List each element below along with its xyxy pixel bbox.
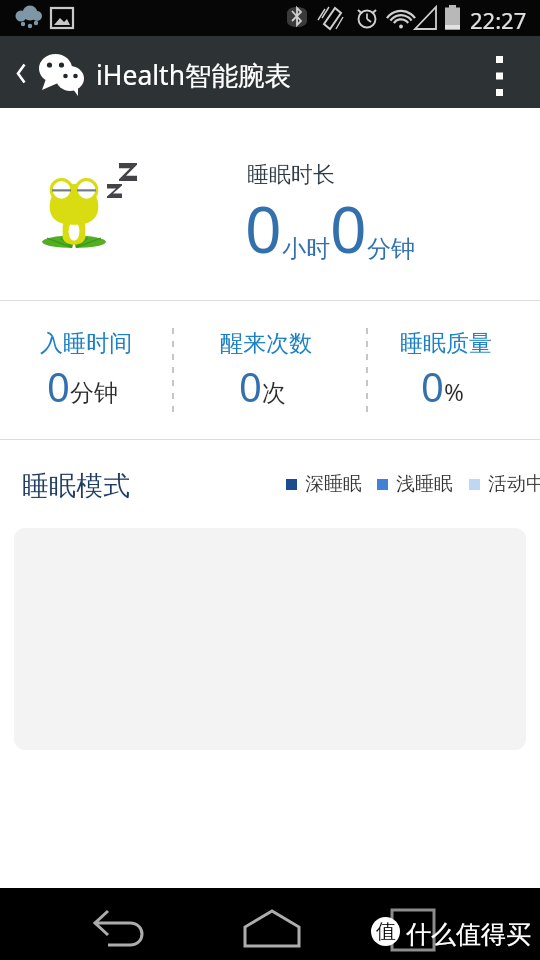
button[interactable]: Back — [86, 902, 150, 946]
staticText: 睡眠模式 — [22, 469, 130, 503]
button[interactable]: 入睡时间 — [0, 301, 180, 439]
staticText: 0 — [239, 359, 262, 413]
staticText: 0 — [330, 185, 367, 272]
staticText: 0 — [47, 359, 70, 413]
staticText: iHealth智能腕表 — [96, 57, 292, 93]
staticText: 深睡眠 — [305, 472, 362, 496]
staticText: % — [444, 375, 464, 408]
staticText: 值 — [376, 919, 396, 944]
button[interactable]: 醒来次数 — [180, 301, 360, 439]
staticText: 次 — [262, 378, 286, 408]
staticText: 浅睡眠 — [396, 472, 453, 496]
staticText: 醒来次数 — [220, 329, 312, 358]
staticText: 0 — [421, 359, 444, 413]
staticText: 活动中 — [488, 472, 540, 496]
staticText: 分钟 — [70, 378, 118, 408]
staticText: 小时 — [282, 234, 330, 264]
button[interactable]: More options — [476, 36, 524, 108]
staticText: 睡眠质量 — [400, 329, 492, 358]
button[interactable]: 睡眠质量 — [360, 301, 540, 439]
staticText: 入睡时间 — [40, 329, 132, 358]
staticText: 睡眠时长 — [247, 161, 335, 189]
staticText: 什么值得买 — [406, 919, 531, 950]
staticText: 22:27 — [470, 5, 527, 35]
button[interactable]: Recent apps — [384, 902, 440, 946]
button[interactable]: Home — [238, 902, 302, 946]
button[interactable]: Back — [0, 36, 40, 108]
staticText: 0 — [245, 185, 282, 272]
staticText: 分钟 — [367, 234, 415, 264]
